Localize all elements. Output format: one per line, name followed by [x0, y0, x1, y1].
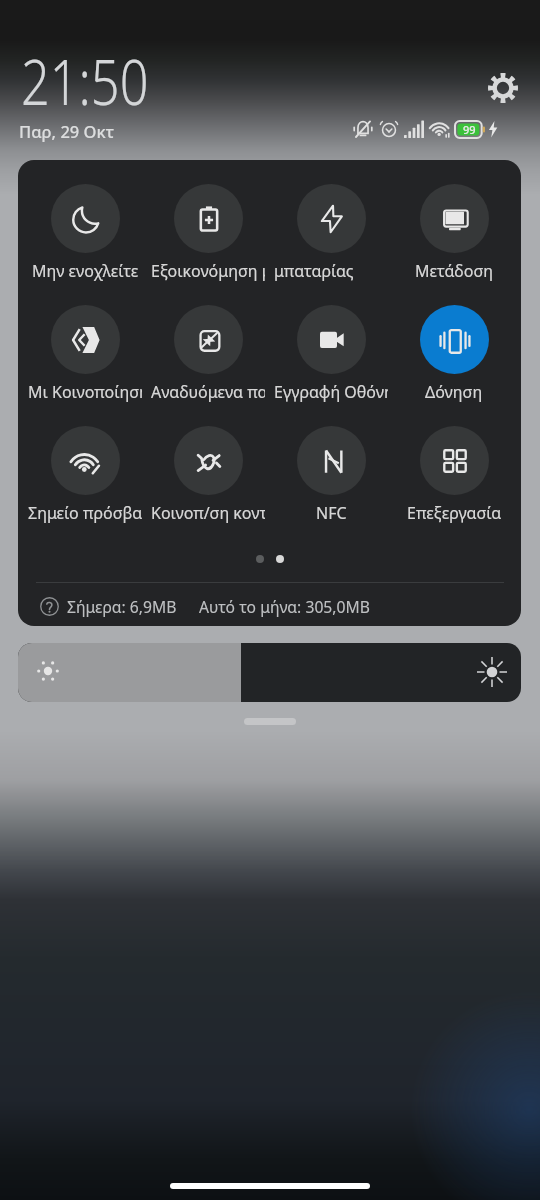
staticText: 99	[463, 122, 476, 137]
staticText: Παρ, 29 Οκτ	[19, 120, 115, 142]
staticText: Αναδυόμενα παράθυρα	[151, 381, 265, 403]
staticText: Κοινοπ/ση κοντά	[151, 502, 265, 524]
staticText: NFC	[316, 502, 347, 524]
button[interactable]: Σημείο πρόσβασης	[28, 426, 142, 528]
staticText: Δόνηση	[425, 381, 483, 403]
button[interactable]: Εγγραφή Οθόνης	[274, 305, 388, 407]
button[interactable]: Κοινοπ/ση κοντά	[151, 426, 265, 528]
button[interactable]: Μην ενοχλείτε	[28, 184, 142, 286]
staticText: μπαταρίας	[274, 260, 354, 282]
button[interactable]: Αναδυόμενα παράθυρα	[151, 305, 265, 407]
button[interactable]: Brightness	[18, 643, 521, 702]
staticText: Μην ενοχλείτε	[32, 260, 139, 282]
staticText: Επεξεργασία	[407, 502, 502, 524]
button[interactable]: Δόνηση	[397, 305, 511, 407]
button[interactable]: Μι Κοινοποίηση	[28, 305, 142, 407]
button[interactable]: Εξοικονόμηση μπαταρίας	[151, 184, 265, 286]
staticText: Εγγραφή Οθόνης	[274, 381, 388, 403]
staticText: Εξοικονόμηση μπαταρίας	[151, 260, 265, 282]
button[interactable]: Settings	[485, 70, 521, 106]
button[interactable]: NFC	[274, 426, 388, 528]
staticText: 21:50	[21, 38, 149, 124]
button[interactable]: μπαταρίας	[274, 184, 388, 286]
button[interactable]: Μετάδοση	[397, 184, 511, 286]
staticText: Σήμερα: 6,9MB	[67, 596, 177, 617]
staticText: Σημείο πρόσβασης	[28, 502, 142, 524]
staticText: Αυτό το μήνα: 305,0MB	[199, 596, 370, 617]
button[interactable]: Επεξεργασία	[397, 426, 511, 528]
staticText: Μι Κοινοποίηση	[28, 381, 142, 403]
staticText: Μετάδοση	[415, 260, 494, 282]
